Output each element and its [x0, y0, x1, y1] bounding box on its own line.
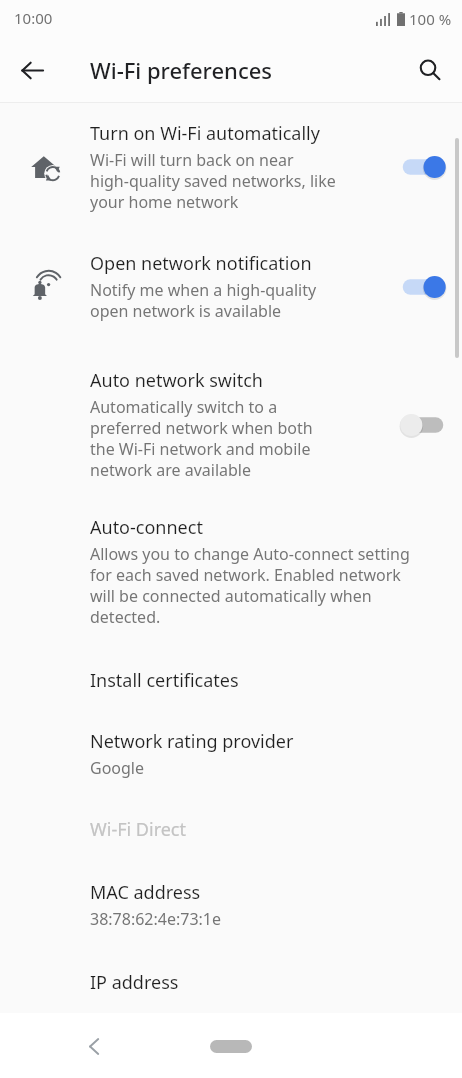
staticText: Wi-Fi Direct	[90, 817, 186, 842]
staticText: 10:00	[14, 8, 53, 28]
button[interactable]: Search	[406, 46, 454, 94]
staticText: Google	[90, 757, 145, 779]
staticText: Auto-connect	[90, 515, 203, 540]
staticText: MAC address	[90, 880, 201, 905]
button[interactable]	[397, 152, 449, 182]
button[interactable]	[397, 272, 449, 302]
staticText: Install certificates	[90, 668, 239, 693]
staticText: 100 %	[409, 9, 452, 29]
button[interactable]	[397, 410, 449, 440]
staticText: Open network notification	[90, 251, 312, 276]
button[interactable]: Auto-connect	[0, 503, 462, 654]
button[interactable]: Auto network switch	[0, 346, 462, 503]
button[interactable]: Network rating provider	[0, 715, 462, 803]
button[interactable]: Back	[8, 46, 56, 94]
button[interactable]: Turn on Wi-Fi automatically	[0, 103, 462, 231]
button[interactable]: Open network notification	[0, 231, 462, 346]
staticText: Wi-Fi preferences	[90, 55, 273, 85]
staticText: Notify me when a high-quality open netwo…	[90, 279, 317, 322]
staticText: Auto network switch	[90, 368, 263, 393]
button[interactable]: Home	[204, 1029, 258, 1063]
button[interactable]: MAC address	[0, 866, 462, 956]
button[interactable]: IP address	[0, 956, 462, 1013]
button[interactable]: Wi-Fi Direct	[0, 803, 462, 866]
staticText: Wi-Fi will turn back on near high-qualit…	[90, 149, 336, 213]
staticText: IP address	[90, 970, 179, 993]
button[interactable]: Install certificates	[0, 654, 462, 715]
button[interactable]: Back	[72, 1024, 116, 1068]
staticText: 38:78:62:4e:73:1e	[90, 908, 222, 930]
staticText: Automatically switch to a preferred netw…	[90, 396, 313, 481]
staticText: Network rating provider	[90, 729, 294, 754]
staticText: Allows you to change Auto-connect settin…	[90, 543, 410, 628]
staticText: Turn on Wi-Fi automatically	[90, 121, 320, 146]
